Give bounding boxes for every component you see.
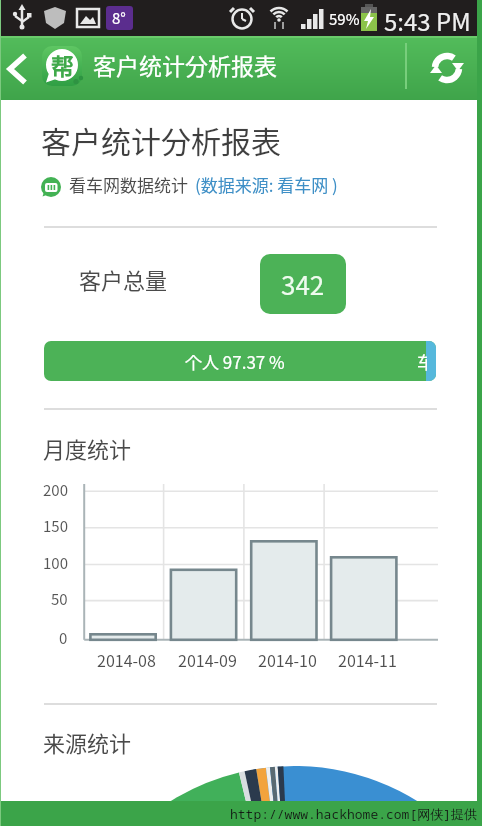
staticText: 2014-09 (178, 648, 237, 670)
staticText: 个人 97.37 % (185, 349, 285, 374)
staticText: 5:43 PM (384, 3, 471, 38)
staticText: 2014-11 (338, 648, 397, 670)
staticText: 车 (417, 349, 427, 374)
button[interactable] (0, 50, 36, 86)
staticText: 客户总量 (79, 263, 168, 295)
staticText: 来源统计 (43, 726, 132, 758)
button[interactable]: 帮 (42, 46, 82, 86)
staticText: 342 (281, 265, 325, 303)
staticText: 月度统计 (43, 432, 132, 464)
button[interactable] (424, 45, 470, 91)
staticText: 50 (51, 588, 68, 610)
staticText: 看车网数据统计 (69, 172, 188, 197)
staticText: 0 (59, 627, 68, 649)
button[interactable]: (数据来源: 看车网 ) (195, 172, 338, 197)
staticText: 8° (112, 7, 126, 29)
staticText: 客户统计分析报表 (93, 48, 277, 81)
staticText: 59% (329, 8, 360, 30)
staticText: http://www.hackhome.com[网侠]提供 (230, 805, 478, 823)
staticText: 帮 (51, 48, 74, 81)
button[interactable]: 342 (260, 254, 346, 314)
staticText: 客户统计分析报表 (41, 118, 281, 161)
staticText: 2014-10 (258, 648, 317, 670)
button[interactable]: 车 (44, 341, 436, 381)
staticText: 150 (43, 515, 68, 537)
staticText: 2014-08 (97, 648, 156, 670)
staticText: 100 (43, 552, 68, 574)
staticText: 200 (43, 479, 68, 501)
